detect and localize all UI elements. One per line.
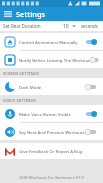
button[interactable]: Dark Mode xyxy=(0,78,103,95)
button[interactable]: Off xyxy=(85,83,97,91)
button[interactable]: Open navigation menu xyxy=(0,7,16,21)
staticText: 10 xyxy=(63,23,69,30)
button[interactable]: Off xyxy=(90,56,99,64)
button[interactable]: Control Animations Manually xyxy=(0,33,103,50)
staticText: Say Next And Previous Workouts xyxy=(19,129,85,135)
staticText: seconds xyxy=(81,23,98,29)
button[interactable]: On xyxy=(85,110,97,118)
button[interactable]: Give Feedback Or Report A Bug xyxy=(0,143,103,159)
staticText: Dark Mode xyxy=(19,84,42,90)
staticText: Notify Before Leaving The Workout xyxy=(19,57,90,63)
button[interactable]: Say Next And Previous Workouts xyxy=(0,123,103,140)
button[interactable]: Set Rest Duration xyxy=(0,21,103,31)
staticText: Give Feedback Or Report A Bug xyxy=(19,148,83,154)
staticText: OHB Workouts For Swimmers V1.0 xyxy=(19,175,84,180)
staticText: SCREEN SETTINGS xyxy=(3,71,40,77)
button[interactable]: On xyxy=(85,38,97,46)
staticText: Set Rest Duration xyxy=(3,23,41,29)
button[interactable]: Off xyxy=(85,128,97,136)
button[interactable]: Notify Before Leaving The Workout xyxy=(0,51,103,68)
staticText: Make Voice Button Visible xyxy=(19,111,71,117)
staticText: Settings xyxy=(16,9,46,19)
button[interactable]: Make Voice Button Visible xyxy=(0,105,103,122)
staticText: Control Animations Manually xyxy=(19,39,78,45)
staticText: VOICE SETTINGS xyxy=(3,98,36,104)
